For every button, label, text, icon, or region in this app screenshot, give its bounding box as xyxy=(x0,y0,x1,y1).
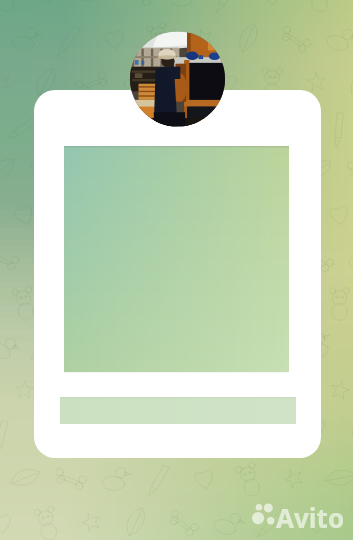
staticText: Avito xyxy=(276,500,345,535)
button[interactable]: Avito xyxy=(252,500,345,535)
